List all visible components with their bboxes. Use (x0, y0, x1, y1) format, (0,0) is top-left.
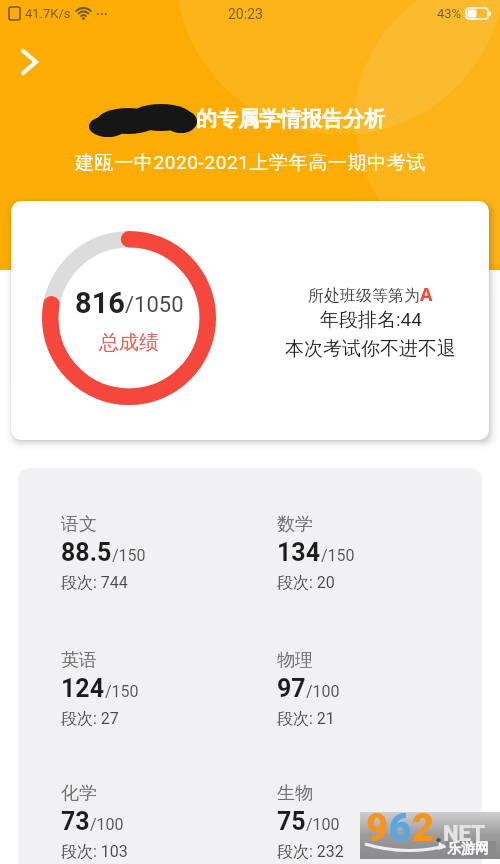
button[interactable]: 数学 (277, 513, 467, 608)
staticText: 75 (277, 807, 306, 836)
staticText: 生物 (277, 782, 313, 805)
staticText: 的专属学情报告分析 (196, 106, 385, 132)
staticText: 段次: 232 (277, 842, 344, 862)
staticText: ··· (96, 6, 108, 21)
staticText: /100 (306, 682, 340, 701)
staticText: /100 (306, 815, 340, 834)
staticText: 2 (412, 806, 435, 851)
staticText: 9 (366, 806, 389, 851)
staticText: /150 (105, 682, 139, 701)
button[interactable]: 816 (11, 201, 489, 440)
button[interactable] (9, 42, 49, 82)
staticText: 6 (389, 806, 412, 851)
staticText: 20:23 (228, 6, 263, 22)
staticText: 124 (61, 674, 105, 703)
staticText: 816 (75, 286, 125, 320)
staticText: 年段排名:44 (320, 308, 422, 332)
staticText: 物理 (277, 649, 313, 672)
staticText: /150 (321, 546, 355, 565)
staticText: 段次: 27 (61, 709, 119, 729)
staticText: 英语 (61, 649, 97, 672)
staticText: 段次: 744 (61, 573, 128, 593)
button[interactable]: 化学 (61, 782, 251, 864)
staticText: /100 (90, 815, 124, 834)
staticText: 段次: 103 (61, 842, 128, 862)
staticText: 数学 (277, 513, 313, 536)
button[interactable]: 9 (360, 812, 500, 859)
staticText: /150 (112, 546, 146, 565)
button[interactable]: 物理 (277, 649, 467, 744)
staticText: 段次: 20 (277, 573, 335, 593)
staticText: 总成绩 (99, 330, 159, 355)
staticText: 本次考试你不进不退 (285, 337, 456, 361)
staticText: 97 (277, 674, 306, 703)
button[interactable]: 英语 (61, 649, 251, 744)
staticText: 乐游网 (447, 840, 489, 856)
staticText: 73 (61, 807, 90, 836)
staticText: NET (443, 821, 485, 847)
staticText: 语文 (61, 513, 97, 536)
staticText: . (435, 820, 443, 848)
button[interactable]: 语文 (61, 513, 251, 608)
staticText: 建瓯一中2020-2021上学年高一期中考试 (75, 151, 426, 175)
staticText: 所处班级等第为A (308, 282, 433, 307)
staticText: /1050 (125, 292, 184, 318)
staticText: 88.5 (61, 538, 112, 567)
button[interactable]: 生物 (277, 782, 467, 864)
staticText: 134 (277, 538, 321, 567)
staticText: 段次: 21 (277, 709, 335, 729)
staticText: 41.7K/s (25, 6, 71, 21)
staticText: 化学 (61, 782, 97, 805)
staticText: 43% (437, 6, 462, 21)
